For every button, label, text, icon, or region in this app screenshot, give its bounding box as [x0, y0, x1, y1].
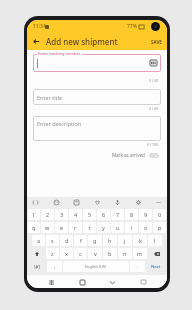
- button[interactable]: Back: [30, 35, 43, 48]
- button[interactable]: Shift: [28, 248, 45, 259]
- button[interactable]: e: [55, 222, 68, 233]
- button[interactable]: f: [74, 235, 87, 246]
- button[interactable]: Backspace: [148, 248, 166, 259]
- button[interactable]: t: [83, 222, 96, 233]
- button[interactable]: 6: [97, 209, 110, 220]
- button[interactable]: Next: [146, 261, 166, 272]
- staticText: 11:34: [33, 23, 46, 30]
- staticText: English (US): [85, 264, 107, 269]
- button[interactable]: Hide keyboard: [137, 276, 149, 288]
- staticText: h: [108, 237, 112, 244]
- button[interactable]: Mark as arrived: [33, 152, 161, 158]
- staticText: n: [123, 250, 127, 257]
- button[interactable]: Keyboard tool 1: [53, 199, 60, 206]
- button[interactable]: 7: [111, 209, 124, 220]
- staticText: w: [45, 224, 50, 231]
- button[interactable]: b: [103, 248, 117, 259]
- staticText: f: [80, 237, 82, 244]
- staticText: e: [60, 224, 64, 231]
- button[interactable]: Enter title: [33, 89, 161, 105]
- staticText: l: [154, 237, 156, 244]
- button[interactable]: Keyboard tool 0: [32, 199, 39, 206]
- button[interactable]: Enter description: [33, 116, 161, 141]
- staticText: ,: [54, 263, 56, 270]
- staticText: 2: [46, 211, 50, 218]
- button[interactable]: w: [41, 222, 54, 233]
- staticText: j: [124, 237, 126, 244]
- staticText: 9: [144, 211, 148, 218]
- button[interactable]: z: [46, 248, 59, 259]
- button[interactable]: Home: [76, 276, 88, 288]
- button[interactable]: Keyboard tool 6: [155, 199, 162, 206]
- button[interactable]: Keyboard tool 4: [114, 199, 121, 206]
- button[interactable]: p: [153, 222, 166, 233]
- other: Scan barcode: [150, 60, 157, 66]
- button[interactable]: y: [97, 222, 110, 233]
- staticText: o: [144, 224, 148, 231]
- button[interactable]: k: [133, 235, 147, 246]
- button[interactable]: m: [133, 248, 147, 259]
- button[interactable]: Keyboard tool 2: [73, 199, 80, 206]
- button[interactable]: o: [139, 222, 152, 233]
- button[interactable]: s: [46, 235, 59, 246]
- button[interactable]: English (US): [63, 261, 129, 272]
- staticText: q: [32, 224, 36, 231]
- staticText: s: [51, 237, 54, 244]
- staticText: 8: [130, 211, 134, 218]
- button[interactable]: 9: [139, 209, 152, 220]
- button[interactable]: q: [28, 222, 40, 233]
- button[interactable]: i: [125, 222, 138, 233]
- staticText: x: [65, 250, 68, 257]
- button[interactable]: l: [148, 235, 162, 246]
- button[interactable]: 2: [41, 209, 54, 220]
- staticText: 4: [74, 211, 78, 218]
- button[interactable]: v: [88, 248, 102, 259]
- staticText: Mark as arrived: [112, 152, 145, 158]
- button[interactable]: r: [69, 222, 82, 233]
- button[interactable]: !#1: [28, 261, 46, 272]
- staticText: 0 / 40: [149, 106, 159, 111]
- button[interactable]: SAVE: [146, 33, 167, 50]
- button[interactable]: u: [111, 222, 124, 233]
- staticText: k: [139, 237, 142, 244]
- staticText: SAVE: [151, 39, 162, 45]
- button[interactable]: Keyboard tool 3: [94, 199, 101, 206]
- staticText: r: [74, 224, 77, 231]
- button[interactable]: d: [60, 235, 73, 246]
- button[interactable]: n: [118, 248, 132, 259]
- button[interactable]: 5: [83, 209, 96, 220]
- staticText: t: [89, 224, 91, 231]
- staticText: Enter description: [37, 120, 82, 127]
- button[interactable]: a: [32, 235, 45, 246]
- staticText: a: [37, 237, 41, 244]
- staticText: 0 / 40: [149, 78, 159, 83]
- button[interactable]: 1: [28, 209, 40, 220]
- staticText: d: [65, 237, 69, 244]
- button[interactable]: Recents: [45, 276, 57, 288]
- button[interactable]: 8: [125, 209, 138, 220]
- staticText: 3: [60, 211, 64, 218]
- button[interactable]: 4: [69, 209, 82, 220]
- staticText: y: [102, 224, 105, 231]
- staticText: Add new shipment: [46, 36, 118, 47]
- button[interactable]: c: [74, 248, 87, 259]
- staticText: 7: [116, 211, 120, 218]
- staticText: 1: [32, 211, 36, 218]
- button[interactable]: 0: [153, 209, 166, 220]
- staticText: Enter tracking number: [38, 51, 81, 56]
- staticText: 0 / 100: [147, 142, 159, 147]
- button[interactable]: ,: [47, 261, 62, 272]
- staticText: .: [137, 263, 139, 270]
- button[interactable]: h: [103, 235, 117, 246]
- button[interactable]: g: [88, 235, 102, 246]
- button[interactable]: Scan barcode: [33, 54, 161, 72]
- button[interactable]: j: [118, 235, 132, 246]
- staticText: b: [108, 250, 112, 257]
- button[interactable]: x: [60, 248, 73, 259]
- button[interactable]: 3: [55, 209, 68, 220]
- button[interactable]: Keyboard tool 5: [135, 199, 142, 206]
- staticText: p: [158, 224, 162, 231]
- staticText: z: [51, 250, 54, 257]
- button[interactable]: Back: [106, 276, 118, 288]
- button[interactable]: .: [130, 261, 145, 272]
